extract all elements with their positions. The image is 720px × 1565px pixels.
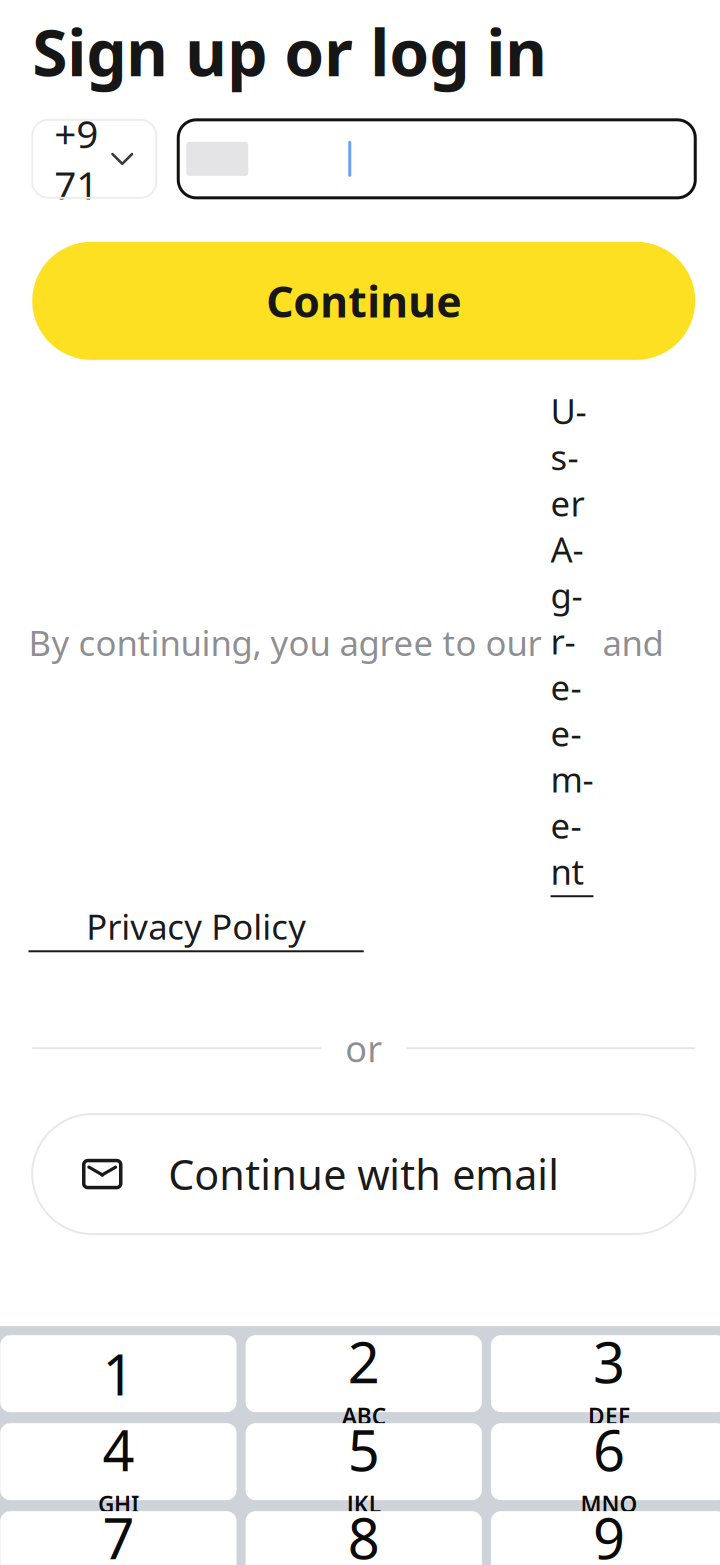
button[interactable]: User Agreement bbox=[550, 388, 593, 897]
button[interactable]: 4 bbox=[0, 1423, 236, 1500]
button[interactable]: Continue bbox=[32, 242, 695, 360]
staticText: ABC bbox=[342, 1401, 386, 1431]
staticText: GHI bbox=[98, 1489, 139, 1519]
staticText: 3 bbox=[593, 1324, 625, 1399]
button[interactable]: 6 bbox=[491, 1423, 720, 1500]
staticText: Privacy Policy bbox=[86, 903, 306, 949]
staticText: Continue bbox=[266, 272, 461, 329]
staticText: 5 bbox=[348, 1412, 380, 1487]
staticText: or bbox=[345, 1024, 382, 1072]
staticText: and bbox=[593, 619, 663, 665]
button[interactable]: 7 bbox=[0, 1511, 236, 1565]
button[interactable] bbox=[178, 120, 695, 198]
staticText: Continue with email bbox=[168, 1147, 559, 1201]
button[interactable]: 5 bbox=[246, 1423, 482, 1500]
staticText: 4 bbox=[102, 1412, 134, 1487]
staticText: 7 bbox=[102, 1500, 134, 1565]
staticText: 1 bbox=[102, 1336, 134, 1411]
staticText: User Agreement bbox=[550, 388, 593, 894]
staticText: 9 bbox=[593, 1500, 625, 1565]
button[interactable]: Continue with email bbox=[32, 1114, 695, 1234]
button[interactable]: 1 bbox=[0, 1335, 236, 1412]
staticText: JKL bbox=[347, 1489, 381, 1519]
button[interactable]: 2 bbox=[246, 1335, 482, 1412]
staticText: MNO bbox=[581, 1489, 638, 1519]
staticText: 8 bbox=[348, 1500, 380, 1565]
staticText: +971 bbox=[54, 107, 98, 210]
button[interactable]: 3 bbox=[491, 1335, 720, 1412]
staticText: DEF bbox=[588, 1401, 630, 1431]
staticText: 6 bbox=[593, 1412, 625, 1487]
staticText: Sign up or log in bbox=[32, 9, 547, 94]
button[interactable]: Privacy Policy bbox=[28, 903, 364, 952]
button[interactable]: 8 bbox=[246, 1511, 482, 1565]
button[interactable]: 9 bbox=[491, 1511, 720, 1565]
staticText: By continuing, you agree to our bbox=[28, 619, 550, 665]
button[interactable]: +971 bbox=[32, 120, 156, 198]
staticText: 2 bbox=[348, 1324, 380, 1399]
